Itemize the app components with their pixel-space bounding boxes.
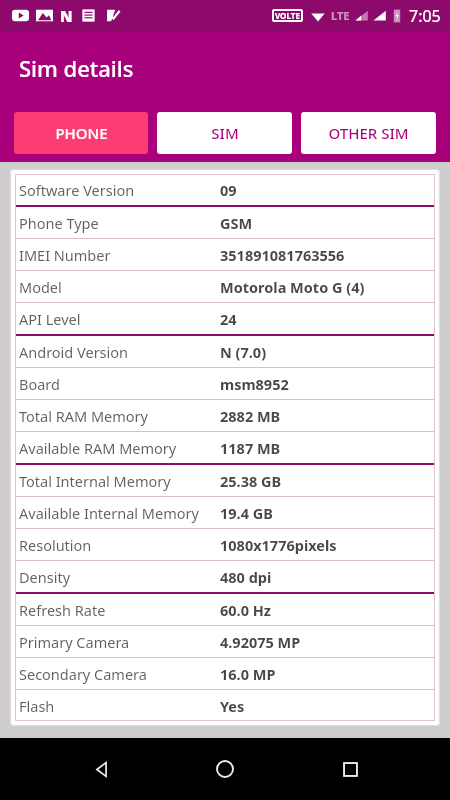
staticText: 2882 MB	[220, 406, 281, 426]
button[interactable]: Phone Type	[15, 207, 435, 238]
button[interactable]: Total Internal Memory	[15, 465, 435, 496]
staticText: Total RAM Memory	[19, 406, 220, 426]
staticText: Motorola Moto G (4)	[220, 277, 365, 297]
staticText: Android Version	[19, 342, 220, 362]
button[interactable]: OTHER SIM	[301, 112, 436, 154]
staticText: 1080x1776pixels	[220, 535, 337, 555]
staticText: SIM	[211, 123, 239, 143]
staticText: msm8952	[220, 374, 289, 394]
staticText: API Level	[19, 309, 220, 329]
staticText: 351891081763556	[220, 245, 345, 265]
staticText: 24	[220, 309, 237, 329]
button[interactable]: IMEI Number	[15, 239, 435, 270]
staticText: Available Internal Memory	[19, 503, 220, 523]
button[interactable]: API Level	[15, 303, 435, 334]
button[interactable]: Total RAM Memory	[15, 400, 435, 431]
staticText: OTHER SIM	[328, 123, 409, 143]
button[interactable]: Secondary Camera	[15, 658, 435, 689]
button[interactable]: Recents	[326, 745, 374, 793]
staticText: Density	[19, 567, 220, 587]
staticText: N	[60, 6, 73, 26]
button[interactable]: Refresh Rate	[15, 594, 435, 625]
button[interactable]: Available Internal Memory	[15, 497, 435, 528]
button[interactable]: Software Version	[15, 174, 435, 205]
staticText: 1187 MB	[220, 438, 281, 458]
button[interactable]: Primary Camera	[15, 626, 435, 657]
staticText: N (7.0)	[220, 342, 267, 362]
staticText: 480 dpi	[220, 567, 272, 587]
staticText: 16.0 MP	[220, 664, 276, 684]
staticText: IMEI Number	[19, 245, 220, 265]
staticText: Yes	[220, 696, 245, 716]
button[interactable]: Flash	[15, 690, 435, 721]
staticText: Total Internal Memory	[19, 471, 220, 491]
button[interactable]: SIM	[157, 112, 292, 154]
staticText: Secondary Camera	[19, 664, 220, 684]
staticText: Software Version	[19, 180, 220, 200]
staticText: 19.4 GB	[220, 503, 273, 523]
staticText: Board	[19, 374, 220, 394]
button[interactable]: PHONE	[14, 112, 148, 154]
staticText: Phone Type	[19, 213, 220, 233]
button[interactable]: Back	[77, 745, 125, 793]
staticText: 4.92075 MP	[220, 632, 301, 652]
button[interactable]: Density	[15, 561, 435, 592]
staticText: Sim details	[19, 53, 134, 83]
staticText: Refresh Rate	[19, 600, 220, 620]
staticText: PHONE	[55, 123, 108, 143]
staticText: 09	[220, 180, 237, 200]
staticText: Resolution	[19, 535, 220, 555]
button[interactable]: Resolution	[15, 529, 435, 560]
button[interactable]: Model	[15, 271, 435, 302]
staticText: GSM	[220, 213, 253, 233]
staticText: LTE	[331, 8, 350, 23]
staticText: Flash	[19, 696, 220, 716]
staticText: Model	[19, 277, 220, 297]
button[interactable]: Available RAM Memory	[15, 432, 435, 463]
staticText: VOLTE	[275, 10, 300, 21]
button[interactable]: Android Version	[15, 336, 435, 367]
staticText: Available RAM Memory	[19, 438, 220, 458]
button[interactable]: Home	[201, 745, 249, 793]
staticText: 7:05	[409, 5, 441, 27]
staticText: Primary Camera	[19, 632, 220, 652]
staticText: 60.0 Hz	[220, 600, 271, 620]
button[interactable]: Board	[15, 368, 435, 399]
staticText: 25.38 GB	[220, 471, 282, 491]
